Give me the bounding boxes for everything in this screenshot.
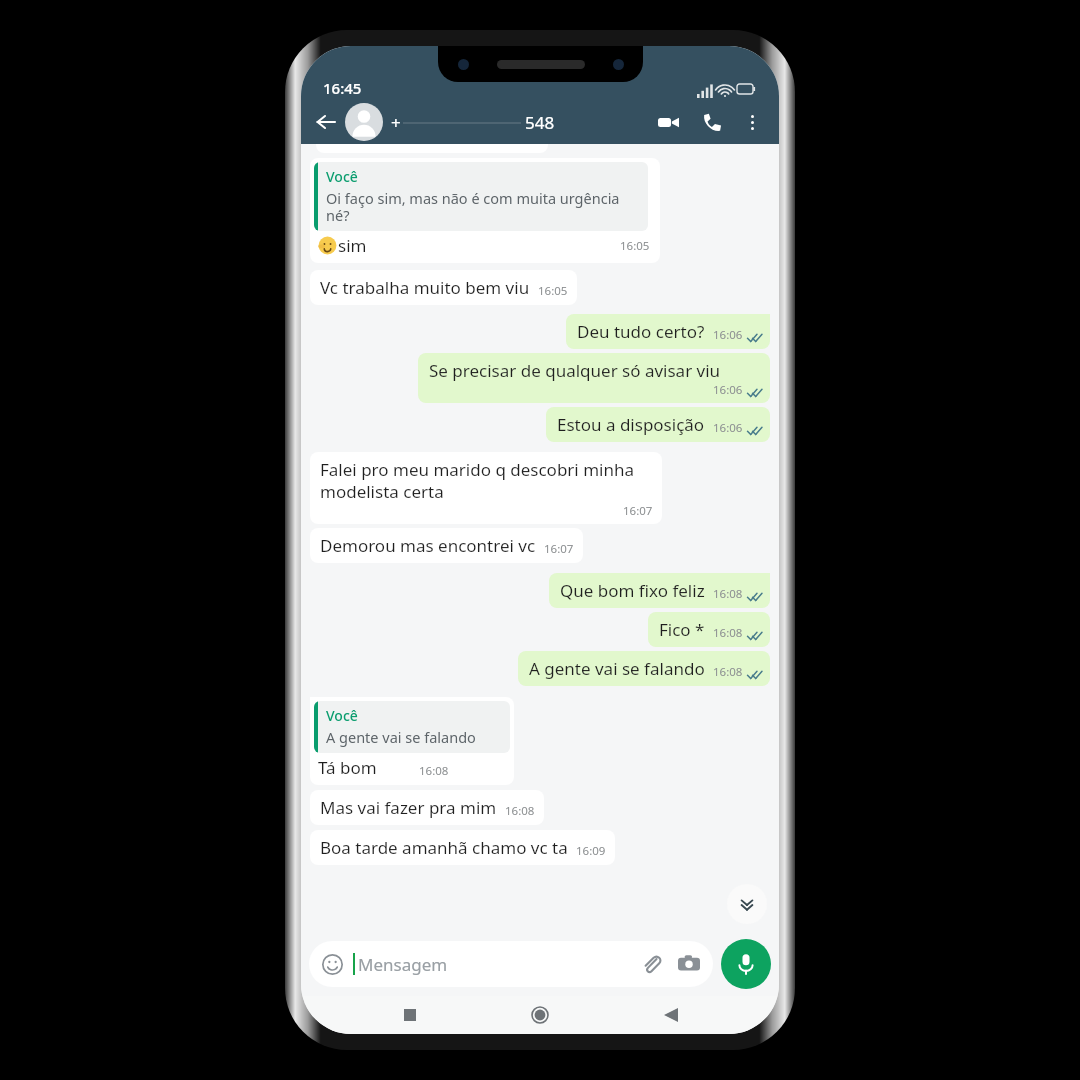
staticText: Estou a disposição xyxy=(557,413,705,436)
staticText: 16:06 xyxy=(713,327,743,343)
button[interactable]: Emoji xyxy=(309,941,713,987)
staticText: 16:08 xyxy=(713,586,743,602)
staticText: A gente vai se falando xyxy=(529,657,705,680)
staticText: 16:08 xyxy=(505,803,535,819)
button[interactable]: Deu tudo certo? xyxy=(566,314,770,349)
button[interactable]: Home xyxy=(518,996,562,1034)
staticText: Fico * xyxy=(659,618,705,641)
button[interactable]: Que bom fixo feliz xyxy=(549,573,770,608)
staticText: Vc trabalha muito bem viu xyxy=(320,276,530,299)
button[interactable]: Vc trabalha muito bem viu xyxy=(310,270,577,305)
button[interactable]: Camera xyxy=(676,951,702,977)
staticText: Mas vai fazer pra mim xyxy=(320,796,497,819)
staticText: 16:06 xyxy=(713,382,743,398)
staticText: Demorou mas encontrei vc xyxy=(320,534,536,557)
staticText: 548 xyxy=(525,111,555,134)
button[interactable]: Attach xyxy=(638,951,664,977)
staticText: Se precisar de qualquer só avisar viu xyxy=(429,359,721,382)
staticText: 16:07 xyxy=(623,503,653,519)
button[interactable]: More options xyxy=(737,107,767,137)
button[interactable]: Estou a disposição xyxy=(546,407,770,442)
staticText: 16:05 xyxy=(538,283,568,299)
staticText: 16:08 xyxy=(713,625,743,641)
staticText: Você xyxy=(326,706,358,725)
button[interactable]: Voice call xyxy=(695,105,729,139)
button[interactable]: Você xyxy=(310,697,514,785)
staticText: 16:06 xyxy=(713,420,743,436)
button[interactable]: + xyxy=(391,111,651,134)
staticText: Boa tarde amanhã chamo vc ta xyxy=(320,836,568,859)
button[interactable]: Se precisar de qualquer só avisar viu xyxy=(418,353,770,403)
staticText: + xyxy=(391,111,401,134)
staticText: 16:09 xyxy=(576,843,606,859)
staticText: Deu tudo certo? xyxy=(577,320,705,343)
staticText: Mensagem xyxy=(358,953,448,976)
button[interactable]: Fico * xyxy=(648,612,770,647)
button[interactable]: A gente vai se falando xyxy=(518,651,770,686)
button[interactable]: Boa tarde amanhã chamo vc ta xyxy=(310,830,615,865)
button[interactable]: Emoji xyxy=(320,952,344,976)
staticText: Falei pro meu marido q descobri minha mo… xyxy=(320,458,653,503)
staticText: 16:07 xyxy=(544,541,574,557)
button[interactable]: Scroll to bottom xyxy=(727,884,767,924)
button[interactable]: Falei pro meu marido q descobri minha mo… xyxy=(310,452,662,524)
button[interactable]: Back xyxy=(649,996,693,1034)
staticText: 16:08 xyxy=(713,664,743,680)
staticText: Você xyxy=(326,167,358,186)
button[interactable]: Video call xyxy=(651,105,685,139)
staticText: 16:45 xyxy=(323,78,362,98)
staticText: A gente vai se falando xyxy=(326,727,476,747)
button[interactable]: Recents xyxy=(388,996,432,1034)
staticText: 16:05 xyxy=(620,238,650,254)
button[interactable]: Voice message xyxy=(721,939,771,989)
staticText: Que bom fixo feliz xyxy=(560,579,705,602)
staticText: sim xyxy=(338,234,367,257)
staticText: Oi faço sim, mas não é com muita urgênci… xyxy=(326,188,640,225)
button[interactable]: Demorou mas encontrei vc xyxy=(310,528,583,563)
button[interactable]: Contact photo xyxy=(345,103,383,141)
button[interactable]: Você xyxy=(310,158,660,263)
button[interactable]: Mas vai fazer pra mim xyxy=(310,790,544,825)
button[interactable]: Back xyxy=(309,105,343,139)
staticText: 16:08 xyxy=(419,763,449,779)
staticText: Tá bom xyxy=(318,756,377,779)
